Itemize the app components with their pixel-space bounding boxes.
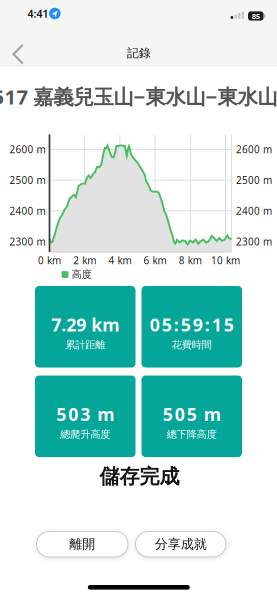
staticText: 4:41 [27, 7, 48, 21]
staticText: 累計距離 [65, 338, 105, 351]
staticText: 10 km [211, 254, 240, 267]
staticText: 85 [252, 11, 260, 21]
button[interactable]: 離開 [36, 531, 128, 557]
button[interactable] [5, 40, 31, 68]
staticText: 2500 m [9, 173, 45, 187]
staticText: 2400 m [236, 204, 272, 218]
staticText: 6 km [144, 254, 167, 267]
staticText: 總爬升高度 [60, 428, 110, 441]
staticText: 2600 m [236, 143, 272, 156]
staticText: 2 km [73, 254, 96, 267]
staticText: 2400 m [9, 204, 45, 218]
staticText: 花費時間 [172, 338, 212, 351]
button[interactable]: 分享成就 [135, 531, 226, 557]
staticText: 2300 m [9, 235, 45, 248]
staticText: 0517 嘉義兒玉山−東水山−東水山自然步道 [0, 83, 277, 110]
staticText: 分享成就 [155, 536, 207, 552]
staticText: 記錄 [127, 46, 151, 60]
staticText: 4 km [108, 254, 131, 267]
staticText: 0 5 : 5 9 : 1 5 [150, 312, 234, 337]
staticText: 2600 m [9, 143, 45, 156]
staticText: 總下降高度 [167, 428, 217, 441]
staticText: 5 0 5 m [163, 402, 221, 426]
staticText: 8 km [179, 254, 202, 267]
staticText: 2300 m [236, 235, 272, 248]
staticText: 高度 [72, 268, 92, 281]
staticText: 2500 m [236, 173, 272, 187]
staticText: 儲存完成 [99, 464, 179, 489]
staticText: 0 km [38, 254, 61, 267]
staticText: 離開 [69, 536, 95, 552]
staticText: 7.29 km [51, 312, 119, 337]
staticText: 5 0 3 m [56, 402, 114, 426]
